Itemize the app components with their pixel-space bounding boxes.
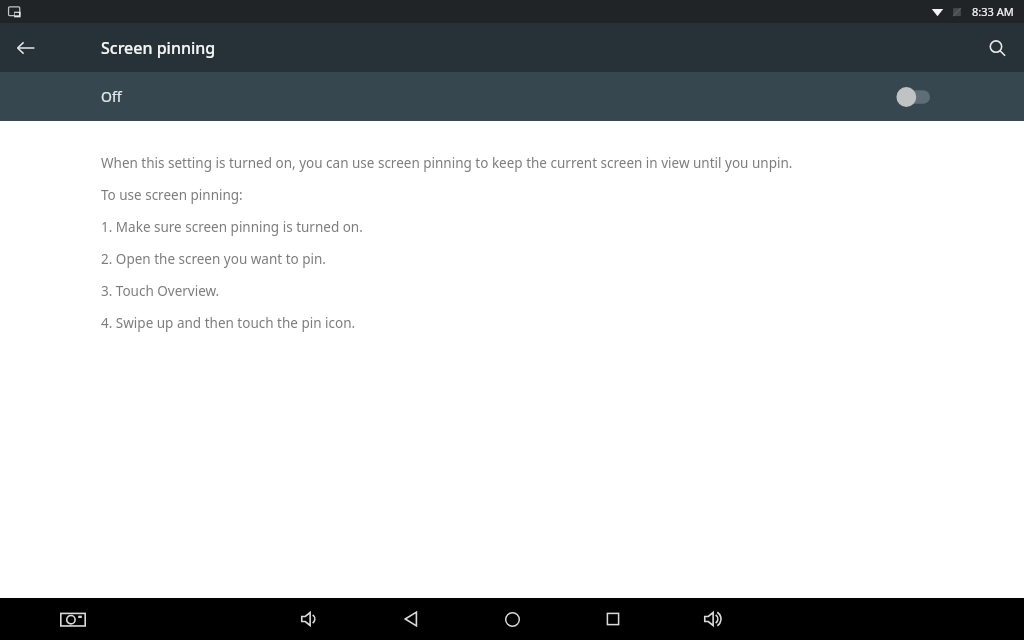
button[interactable]: Back [6, 28, 46, 68]
button[interactable]: Home [484, 598, 540, 640]
staticText: To use screen pinning: [101, 186, 243, 204]
button[interactable]: Recents [585, 598, 641, 640]
button[interactable]: Volume down [283, 598, 339, 640]
button[interactable]: Screenshot [45, 598, 101, 640]
staticText: 1. Make sure screen pinning is turned on… [101, 218, 363, 236]
staticText: 8:33 AM [972, 4, 1014, 19]
other: Screen pinning toggle [896, 86, 930, 108]
staticText: 3. Touch Overview. [101, 282, 220, 300]
staticText: 4. Swipe up and then touch the pin icon. [101, 314, 356, 332]
button[interactable]: Back [383, 598, 439, 640]
button[interactable]: Off [0, 72, 1024, 121]
button[interactable]: Volume up [686, 598, 742, 640]
staticText: Off [101, 87, 122, 106]
staticText: Screen pinning [101, 37, 216, 59]
staticText: 2. Open the screen you want to pin. [101, 250, 326, 268]
button[interactable]: Search [976, 27, 1018, 69]
staticText: When this setting is turned on, you can … [101, 154, 793, 172]
